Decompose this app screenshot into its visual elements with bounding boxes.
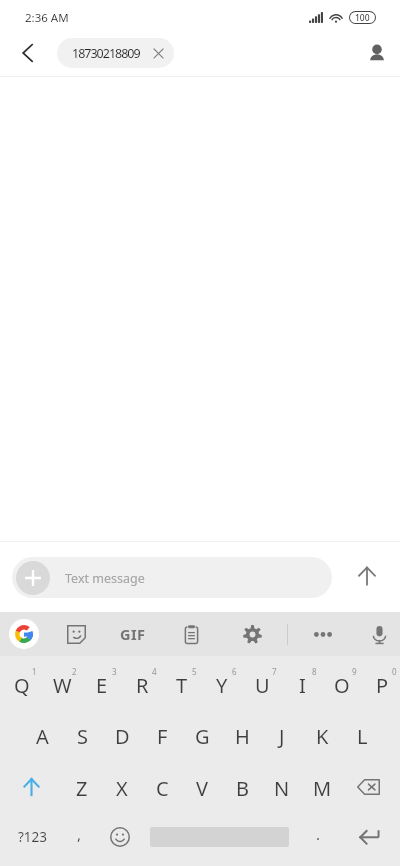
- button[interactable]: A: [20, 712, 60, 763]
- staticText: N: [274, 775, 290, 802]
- button[interactable]: K: [300, 712, 340, 763]
- staticText: 2:36 AM: [25, 10, 69, 26]
- button[interactable]: S: [60, 712, 100, 763]
- button[interactable]: M: [300, 763, 340, 815]
- staticText: 8: [312, 666, 317, 677]
- staticText: Q: [14, 672, 30, 699]
- staticText: K: [316, 723, 329, 750]
- staticText: V: [196, 775, 208, 802]
- staticText: 100: [355, 12, 370, 23]
- button[interactable]: Voice input: [357, 612, 400, 656]
- button[interactable]: X: [100, 763, 140, 815]
- staticText: 0: [392, 666, 397, 677]
- button[interactable]: More options: [300, 612, 346, 656]
- button[interactable]: Backspace: [340, 763, 400, 815]
- button[interactable]: I: [280, 660, 320, 712]
- button[interactable]: Q: [0, 660, 40, 712]
- button[interactable]: D: [100, 712, 140, 763]
- staticText: A: [36, 723, 49, 750]
- staticText: O: [334, 672, 350, 699]
- staticText: 9: [352, 666, 357, 677]
- staticText: GIF: [120, 624, 146, 644]
- staticText: R: [136, 672, 149, 699]
- staticText: H: [235, 723, 250, 750]
- staticText: X: [116, 775, 128, 802]
- staticText: ,: [77, 824, 82, 844]
- button[interactable]: W: [40, 660, 80, 712]
- button[interactable]: P: [360, 660, 400, 712]
- button[interactable]: Z: [60, 763, 100, 815]
- button[interactable]: Google search: [0, 612, 47, 656]
- staticText: I: [299, 672, 306, 699]
- staticText: .: [316, 824, 321, 844]
- staticText: D: [115, 723, 130, 750]
- button[interactable]: Shift: [0, 763, 60, 815]
- staticText: Y: [216, 672, 228, 699]
- staticText: C: [156, 775, 169, 802]
- button[interactable]: C: [140, 763, 180, 815]
- staticText: 7: [272, 666, 277, 677]
- button[interactable]: Clipboard: [168, 612, 214, 656]
- button[interactable]: B: [220, 763, 260, 815]
- staticText: 2: [72, 666, 77, 677]
- staticText: G: [195, 723, 210, 750]
- staticText: ?123: [18, 828, 48, 846]
- button[interactable]: V: [180, 763, 220, 815]
- staticText: 1: [32, 666, 37, 677]
- button[interactable]: U: [240, 660, 280, 712]
- button[interactable]: Contact details: [354, 30, 400, 76]
- staticText: T: [176, 672, 188, 699]
- button[interactable]: O: [320, 660, 360, 712]
- button[interactable]: L: [340, 712, 380, 763]
- button[interactable]: Settings: [229, 612, 275, 656]
- button[interactable]: GIF: [110, 612, 156, 656]
- staticText: 18730218809: [72, 45, 140, 62]
- button[interactable]: Stickers: [53, 612, 99, 656]
- staticText: F: [157, 723, 168, 750]
- staticText: Z: [76, 775, 88, 802]
- button[interactable]: 18730218809: [57, 38, 174, 68]
- staticText: W: [53, 672, 72, 699]
- staticText: Text message: [65, 570, 145, 587]
- button[interactable]: E: [80, 660, 120, 712]
- button[interactable]: R: [120, 660, 160, 712]
- button[interactable]: F: [140, 712, 180, 763]
- staticText: 6: [232, 666, 237, 677]
- button[interactable]: Comma: [58, 815, 100, 866]
- button[interactable]: Enter: [338, 815, 400, 866]
- staticText: B: [236, 775, 249, 802]
- button[interactable]: T: [160, 660, 200, 712]
- button[interactable]: Period: [299, 815, 338, 866]
- button[interactable]: Text message: [12, 557, 332, 598]
- staticText: J: [279, 723, 285, 750]
- staticText: E: [96, 672, 108, 699]
- button[interactable]: H: [220, 712, 260, 763]
- button[interactable]: G: [180, 712, 220, 763]
- button[interactable]: Symbols: [0, 815, 58, 866]
- staticText: 4: [152, 666, 157, 677]
- staticText: L: [357, 723, 368, 750]
- button[interactable]: Y: [200, 660, 240, 712]
- button[interactable]: Send: [334, 542, 400, 612]
- button[interactable]: Emoji: [100, 815, 140, 866]
- staticText: U: [255, 672, 270, 699]
- button[interactable]: Space: [140, 815, 299, 866]
- staticText: S: [77, 723, 88, 750]
- button[interactable]: J: [260, 712, 300, 763]
- staticText: 3: [112, 666, 117, 677]
- staticText: M: [313, 775, 332, 802]
- button[interactable]: Back: [0, 30, 54, 76]
- staticText: 5: [192, 666, 197, 677]
- staticText: P: [376, 672, 389, 699]
- button[interactable]: N: [260, 763, 300, 815]
